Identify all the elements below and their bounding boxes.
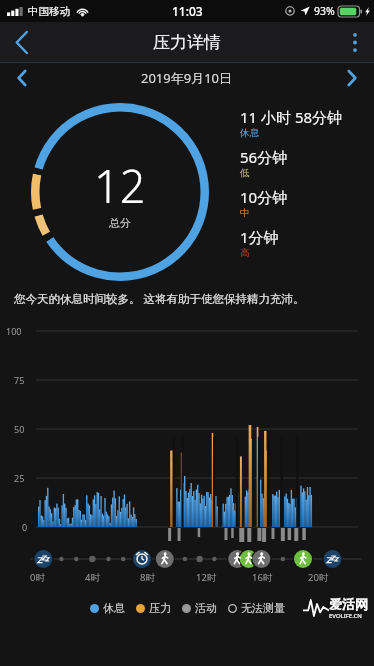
staticText: 11 小时 58分钟	[240, 107, 343, 127]
staticText: 11:03	[172, 3, 203, 19]
staticText: 中国移动	[28, 5, 70, 18]
staticText: 16时	[252, 571, 273, 584]
button[interactable]: Back	[0, 22, 44, 62]
staticText: 压力	[149, 601, 171, 615]
staticText: 75	[14, 374, 25, 386]
button[interactable]: 休息	[90, 601, 125, 615]
button[interactable]: 活动	[182, 601, 217, 615]
staticText: 总分	[109, 216, 131, 230]
staticText: EVOLIFE.CN	[329, 612, 362, 620]
staticText: 低	[240, 167, 250, 179]
staticText: 93%	[314, 4, 335, 18]
staticText: 0	[22, 521, 28, 533]
button[interactable]: More options	[336, 22, 374, 62]
staticText: 4时	[85, 571, 100, 584]
staticText: 无法测量	[241, 601, 285, 615]
staticText: 休息	[240, 127, 259, 139]
button[interactable]: Previous day	[0, 63, 44, 93]
staticText: 压力详情	[153, 32, 221, 53]
staticText: 100	[6, 325, 22, 337]
staticText: 爱活网	[329, 596, 368, 612]
staticText: 1分钟	[240, 227, 279, 247]
staticText: 中	[240, 207, 250, 219]
staticText: 高	[240, 247, 250, 259]
button[interactable]: 无法测量	[228, 601, 285, 615]
staticText: 25	[14, 472, 25, 484]
staticText: 12时	[196, 571, 217, 584]
staticText: 0时	[30, 571, 45, 584]
staticText: 8时	[140, 571, 155, 584]
staticText: 活动	[195, 601, 217, 615]
staticText: 56分钟	[240, 147, 288, 167]
staticText: 2019年9月10日	[141, 69, 233, 87]
staticText: 10分钟	[240, 187, 288, 207]
staticText: 50	[14, 423, 25, 435]
staticText: 您今天的休息时间较多。 这将有助于使您保持精力充沛。	[14, 291, 305, 307]
staticText: 休息	[103, 601, 125, 615]
button[interactable]: 压力	[136, 601, 171, 615]
staticText: 20时	[308, 571, 329, 584]
staticText: 12	[94, 155, 146, 216]
button[interactable]: Next day	[330, 63, 374, 93]
